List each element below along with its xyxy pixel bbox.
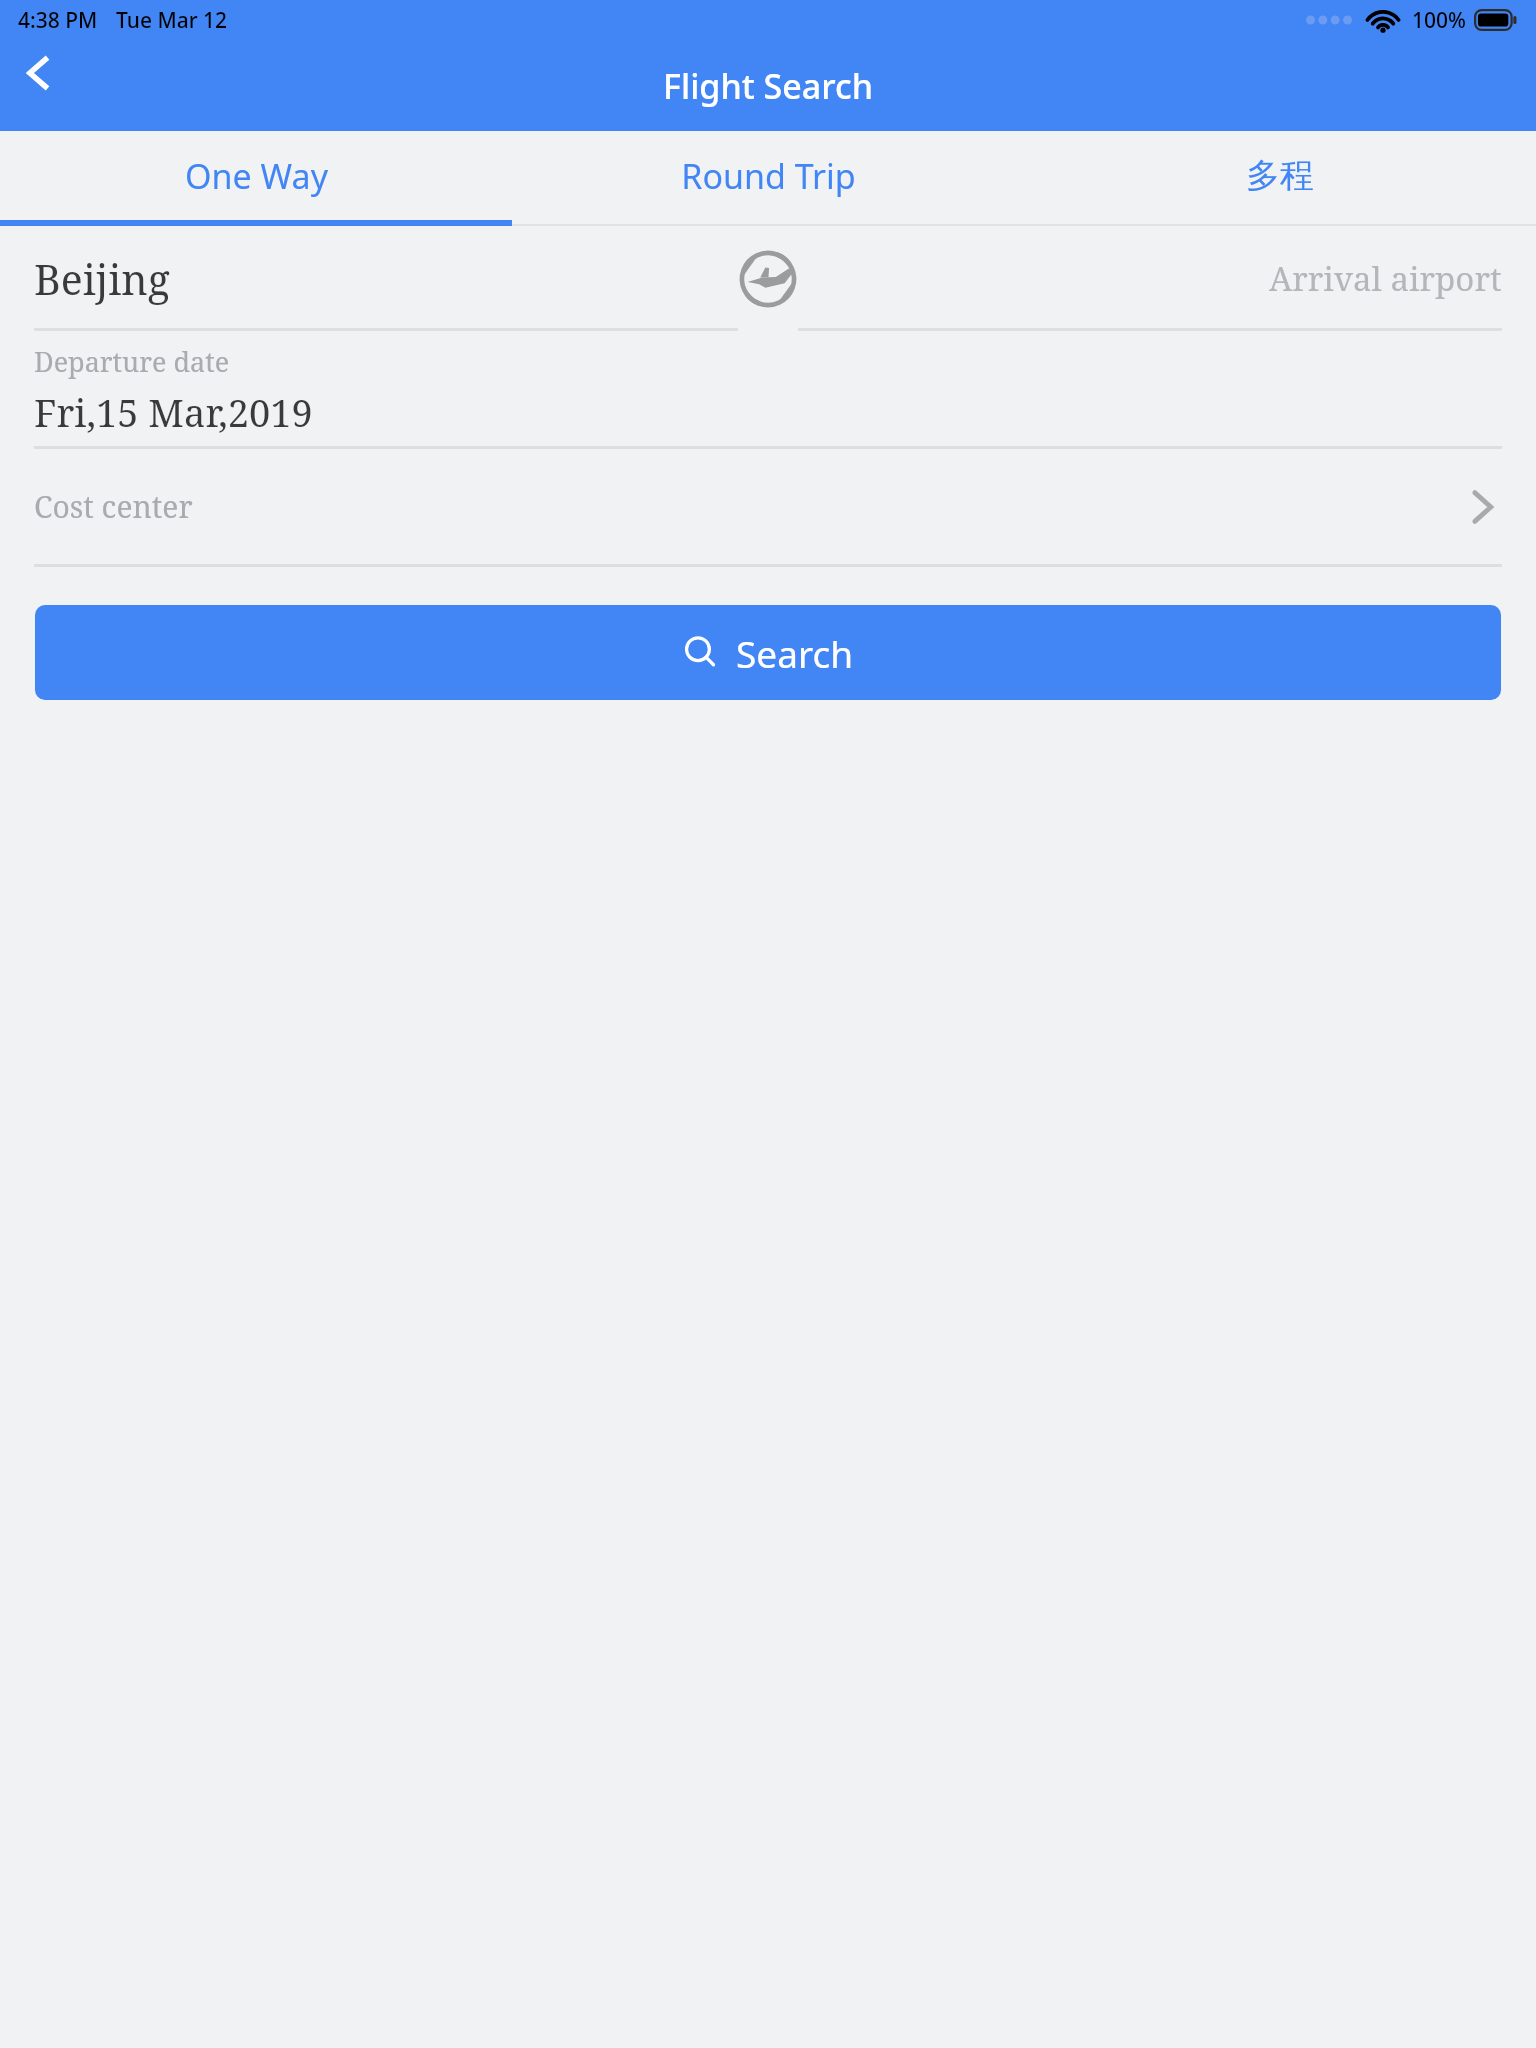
staticText: 4:38 PM xyxy=(18,6,98,35)
button[interactable]: One Way xyxy=(0,131,512,220)
button[interactable]: Departure date xyxy=(0,331,1536,449)
staticText: Flight Search xyxy=(663,63,873,109)
button[interactable]: Cost center xyxy=(0,449,1536,567)
staticText: Beijing xyxy=(34,251,170,307)
staticText: Round Trip xyxy=(681,153,856,199)
staticText: Arrival airport xyxy=(1269,256,1502,301)
button[interactable]: Search xyxy=(35,605,1501,700)
staticText: Tue Mar 12 xyxy=(116,6,228,35)
button[interactable]: Beijing xyxy=(0,226,715,331)
staticText: Cost center xyxy=(34,486,193,527)
staticText: Departure date xyxy=(34,343,230,380)
staticText: 100% xyxy=(1412,6,1466,35)
staticText: Search xyxy=(736,628,854,678)
button[interactable]: 多程 xyxy=(1024,131,1536,220)
button[interactable]: Back xyxy=(0,35,76,111)
button[interactable]: Arrival airport xyxy=(820,226,1536,331)
staticText: 多程 xyxy=(1246,154,1314,197)
staticText: One Way xyxy=(185,153,328,199)
staticText: Fri,15 Mar,2019 xyxy=(34,386,313,438)
button[interactable]: Swap airports xyxy=(715,226,820,331)
button[interactable]: Round Trip xyxy=(512,131,1024,220)
